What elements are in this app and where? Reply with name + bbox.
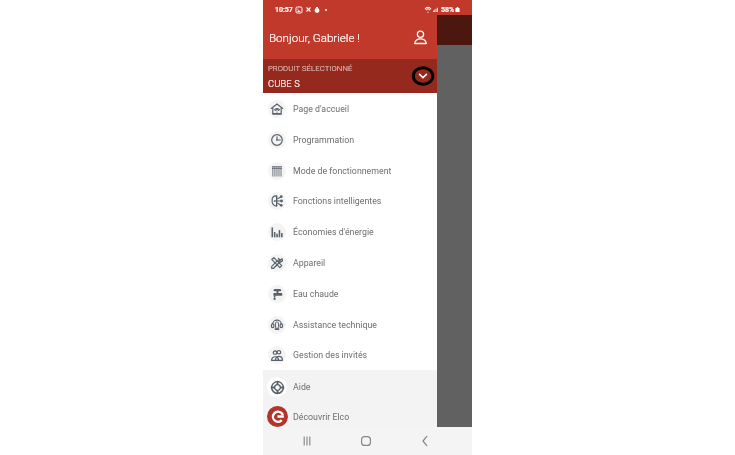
button[interactable]: Gestion des invités xyxy=(263,339,437,370)
button[interactable]: Mode de fonctionnement xyxy=(263,155,437,186)
staticText: Économies d'énergie xyxy=(293,227,374,237)
staticText: Page d'accueil xyxy=(293,104,350,114)
button[interactable]: Aide xyxy=(263,372,437,401)
staticText: Assistance technique xyxy=(293,320,377,330)
button[interactable]: Fonctions intelligentes xyxy=(263,185,437,216)
button[interactable]: Account xyxy=(409,26,431,48)
staticText: PRODUIT SÉLECTIONNÉ xyxy=(268,64,353,73)
button[interactable]: Home xyxy=(356,431,376,451)
staticText: Découvrir Elco xyxy=(293,412,350,422)
button[interactable]: PRODUIT SÉLECTIONNÉ xyxy=(263,59,437,93)
button[interactable]: Économies d'énergie xyxy=(263,216,437,247)
staticText: 58% xyxy=(441,6,455,14)
staticText: 10:57 xyxy=(275,6,293,14)
staticText: Programmation xyxy=(293,135,355,145)
staticText: Appareil xyxy=(293,258,326,268)
staticText: Aide xyxy=(293,382,311,392)
staticText: Gestion des invités xyxy=(293,350,368,360)
staticText: Mode de fonctionnement xyxy=(293,166,392,176)
button[interactable]: Change product xyxy=(410,63,436,89)
button[interactable]: Back xyxy=(415,431,435,451)
button[interactable]: Programmation xyxy=(263,124,437,155)
staticText: Fonctions intelligentes xyxy=(293,196,382,206)
staticText: CUBE S xyxy=(268,78,300,89)
button[interactable]: Recent apps xyxy=(297,431,317,451)
button[interactable]: Eau chaude xyxy=(263,278,437,309)
button[interactable]: Assistance technique xyxy=(263,309,437,340)
staticText: Bonjour, Gabriele ! xyxy=(269,31,360,45)
button[interactable]: Découvrir Elco xyxy=(263,402,437,431)
button[interactable]: Page d'accueil xyxy=(263,93,437,124)
staticText: Eau chaude xyxy=(293,289,339,299)
button[interactable]: Appareil xyxy=(263,247,437,278)
